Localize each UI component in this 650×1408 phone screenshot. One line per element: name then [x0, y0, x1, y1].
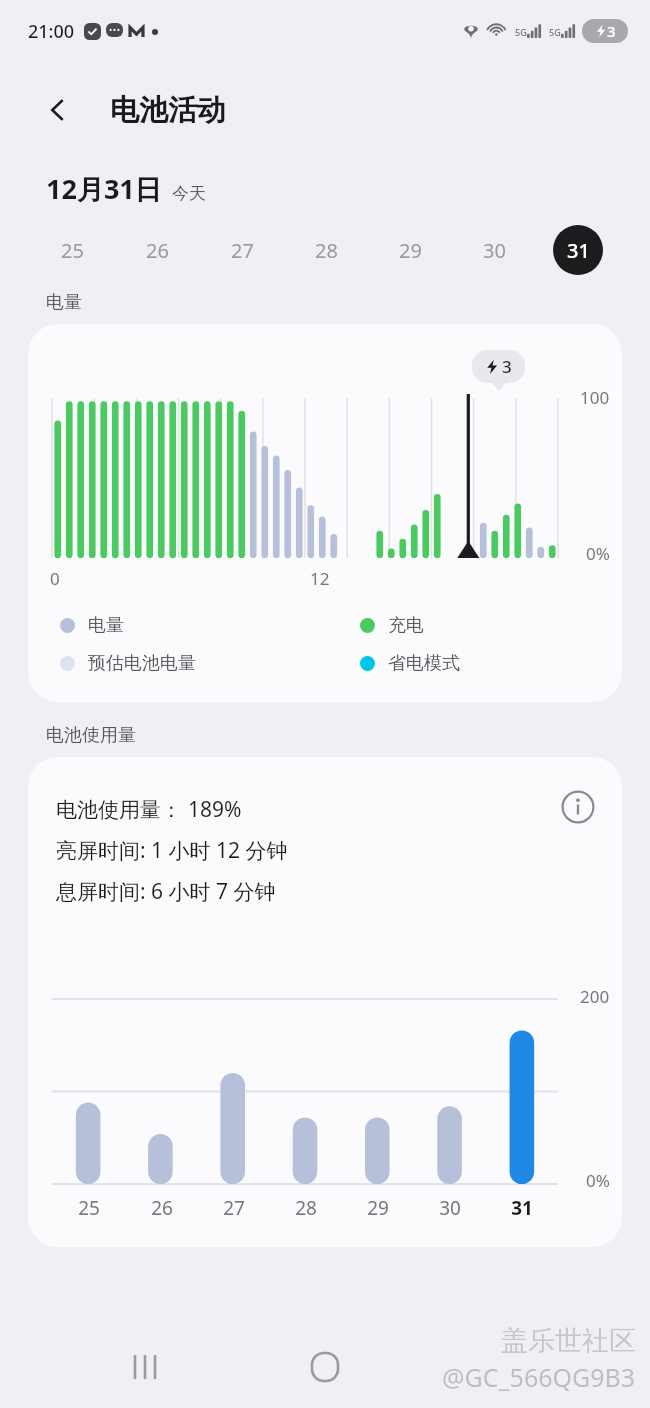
staticText: 12月31日 — [46, 170, 162, 207]
staticText: 189% — [188, 795, 242, 824]
staticText: 31 — [567, 237, 590, 264]
staticText: 0% — [586, 542, 610, 565]
staticText: 充电 — [388, 614, 424, 637]
staticText: 29 — [367, 1195, 389, 1221]
button[interactable]: Info — [556, 785, 600, 829]
staticText: 5G — [549, 26, 561, 38]
staticText: 5G — [515, 26, 527, 38]
staticText: 息屏时间: 6 小时 7 分钟 — [56, 877, 276, 906]
staticText: 27 — [231, 237, 254, 264]
staticText: 3 — [502, 355, 512, 378]
staticText: 28 — [295, 1195, 317, 1221]
button[interactable]: 31 — [536, 225, 620, 275]
staticText: 26 — [151, 1195, 173, 1221]
staticText: 31 — [511, 1195, 533, 1221]
staticText: 21:00 — [28, 19, 75, 44]
button[interactable]: 100 — [28, 324, 622, 702]
button[interactable]: Back — [36, 88, 80, 132]
staticText: 25 — [78, 1195, 100, 1221]
staticText: 3 — [607, 21, 616, 41]
staticText: 电量 — [88, 614, 124, 637]
staticText: @GC_566QG9B3 — [442, 1360, 636, 1394]
staticText: 电池使用量 — [46, 724, 136, 747]
button[interactable]: Home — [297, 1339, 353, 1395]
button[interactable]: 27 — [200, 225, 284, 275]
staticText: 省电模式 — [388, 652, 460, 675]
button[interactable]: 30 — [452, 225, 536, 275]
staticText: 100 — [580, 386, 610, 409]
staticText: 27 — [223, 1195, 245, 1221]
staticText: 亮屏时间: 1 小时 12 分钟 — [56, 836, 288, 865]
button[interactable]: 25 — [30, 225, 115, 275]
button[interactable]: 26 — [115, 225, 200, 275]
staticText: 电量 — [46, 291, 82, 314]
staticText: 26 — [146, 237, 169, 264]
staticText: 28 — [315, 237, 338, 264]
staticText: 25 — [61, 237, 84, 264]
staticText: 0 — [50, 567, 60, 590]
staticText: 今天 — [172, 183, 206, 204]
staticText: 电池使用量： — [56, 797, 182, 823]
staticText: 29 — [399, 237, 422, 264]
button[interactable]: 29 — [368, 225, 452, 275]
staticText: 电池活动 — [110, 92, 226, 129]
staticText: 预估电池电量 — [88, 652, 196, 675]
staticText: 30 — [483, 237, 506, 264]
staticText: 0% — [586, 1169, 610, 1192]
button[interactable]: 28 — [284, 225, 368, 275]
button[interactable]: Recents — [118, 1339, 174, 1395]
staticText: 盖乐世社区 — [501, 1324, 636, 1358]
staticText: 200 — [580, 985, 610, 1008]
staticText: 30 — [439, 1195, 461, 1221]
staticText: 12 — [310, 567, 330, 590]
button[interactable]: 电池使用量： — [28, 757, 622, 1247]
